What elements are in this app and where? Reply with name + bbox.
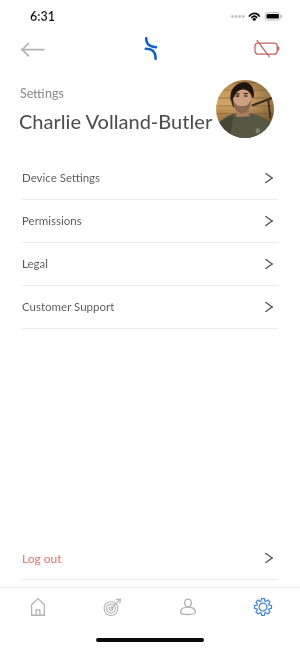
button[interactable]: Profile photo [216, 80, 274, 138]
button[interactable]: Home [0, 588, 75, 626]
staticText: Device Settings [22, 171, 101, 185]
button[interactable]: Legal [0, 243, 300, 286]
staticText: 6:31 [30, 9, 55, 24]
staticText: Charlie Volland-Butler [19, 109, 213, 133]
button[interactable]: Settings [225, 588, 300, 626]
button[interactable]: Back [14, 36, 50, 64]
button[interactable]: Customer Support [0, 286, 300, 329]
staticText: Log out [22, 551, 62, 565]
staticText: Legal [22, 257, 48, 271]
button[interactable]: Permissions [0, 200, 300, 243]
button[interactable]: Profile [150, 588, 225, 626]
button[interactable]: Device Settings [0, 157, 300, 200]
button[interactable]: Battery disconnected [250, 36, 284, 64]
staticText: Customer Support [22, 300, 115, 314]
staticText: Settings [20, 86, 64, 101]
staticText: Permissions [22, 214, 82, 228]
button[interactable]: Log out [0, 537, 300, 580]
button[interactable]: Goals [75, 588, 150, 626]
